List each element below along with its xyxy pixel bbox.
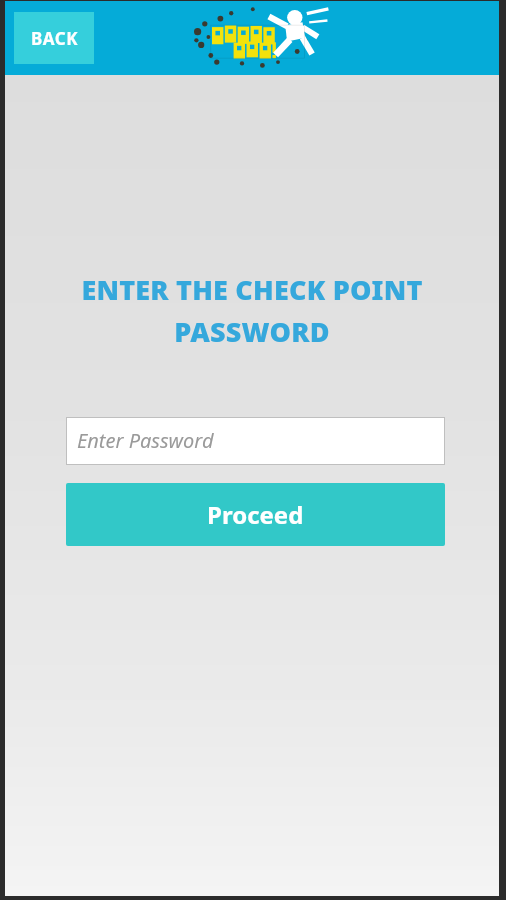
other: Cyber Run logo — [194, 4, 314, 70]
staticText: ENTER THE CHECK POINT PASSWORD — [21, 271, 483, 350]
staticText: Proceed — [207, 498, 304, 531]
button[interactable]: BACK — [14, 12, 94, 64]
button[interactable]: Enter Password — [66, 417, 445, 465]
staticText: Enter Password — [77, 427, 214, 454]
button[interactable]: Proceed — [66, 483, 445, 546]
staticText: BACK — [31, 27, 78, 50]
